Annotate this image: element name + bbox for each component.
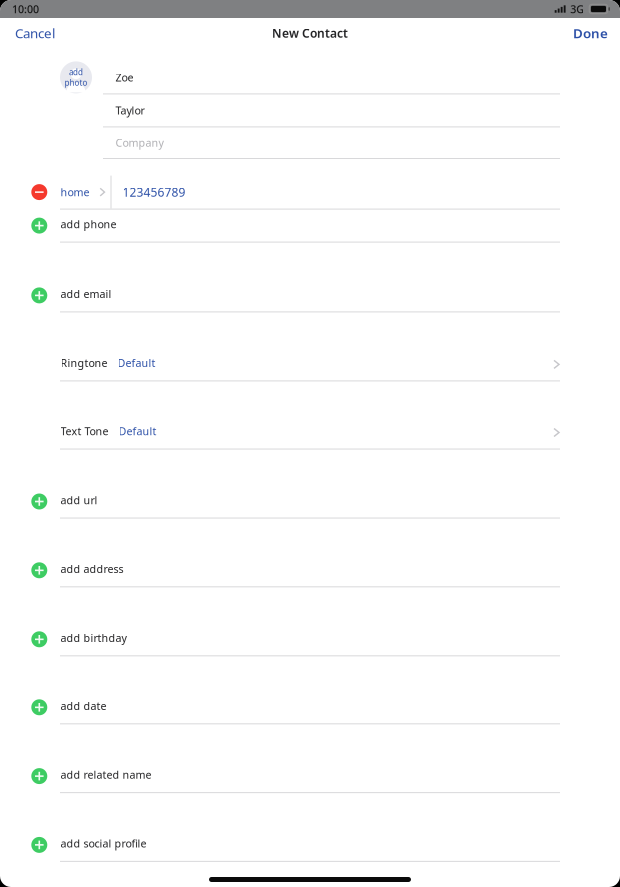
button[interactable]: add url (0, 485, 620, 518)
button[interactable]: add email (0, 279, 620, 312)
staticText: Company (115, 136, 163, 150)
staticText: Zoe (115, 70, 133, 84)
staticText: Done (573, 24, 608, 42)
staticText: add social profile (60, 836, 146, 850)
staticText: 10:00 (12, 2, 39, 16)
staticText: 3G (570, 2, 584, 16)
button[interactable]: Text Tone (0, 416, 620, 449)
staticText: add address (60, 562, 123, 576)
staticText: Text Tone (60, 424, 108, 438)
staticText: add url (60, 493, 97, 507)
button[interactable]: Ringtone (0, 348, 620, 381)
button[interactable]: add birthday (0, 623, 620, 656)
button[interactable]: add related name (0, 760, 620, 793)
staticText: Default (117, 356, 155, 370)
button[interactable]: add date (0, 691, 620, 724)
staticText: add birthday (60, 631, 126, 645)
staticText: Cancel (15, 24, 55, 42)
staticText: photo (64, 77, 87, 88)
staticText: Ringtone (60, 356, 107, 370)
staticText: home (60, 185, 89, 199)
staticText: add email (60, 287, 111, 301)
staticText: add date (60, 699, 106, 713)
staticText: add related name (60, 767, 151, 782)
staticText: add phone (60, 217, 116, 231)
staticText: Default (118, 424, 156, 438)
button[interactable]: add social profile (0, 829, 620, 862)
button[interactable]: add phone (0, 210, 620, 243)
button[interactable]: Done (563, 16, 620, 50)
button[interactable]: Cancel (0, 16, 65, 50)
staticText: add (69, 67, 83, 77)
button[interactable]: add address (0, 554, 620, 587)
staticText: 123456789 (122, 184, 185, 200)
staticText: New Contact (272, 25, 348, 41)
button[interactable]: Add photo (60, 61, 92, 93)
staticText: Taylor (115, 103, 144, 117)
button[interactable]: home (0, 176, 620, 210)
